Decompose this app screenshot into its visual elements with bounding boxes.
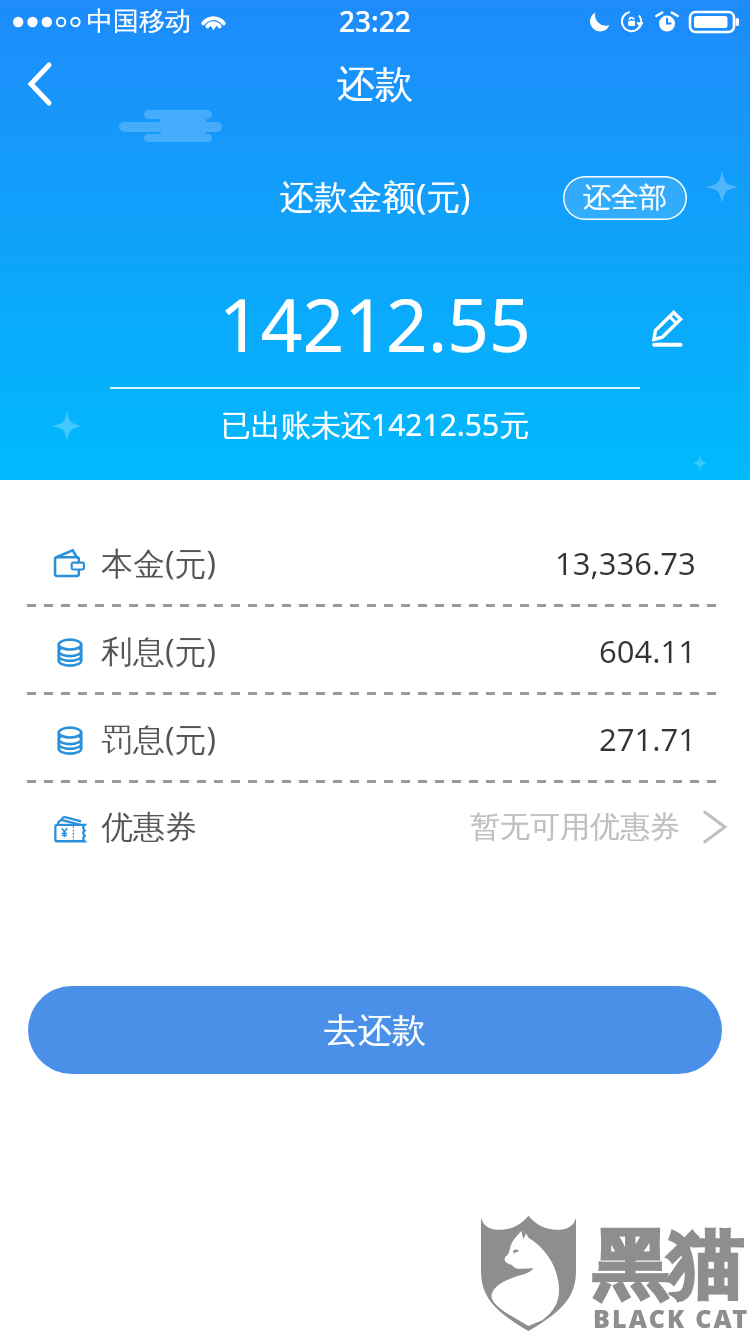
button[interactable]: 利息(元) [0,607,750,695]
staticText: 还款金额(元) [280,173,471,219]
staticText: 23:22 [339,2,411,40]
button[interactable]: Back [10,56,66,112]
staticText: BLACK CAT [593,1301,750,1334]
button[interactable]: 本金(元) [0,519,750,607]
staticText: 本金(元) [101,541,217,585]
staticText: 去还款 [324,1009,426,1052]
button[interactable]: Edit amount [635,296,697,358]
button[interactable]: 罚息(元) [0,695,750,783]
staticText: 271.71 [599,718,696,760]
staticText: 罚息(元) [101,717,217,761]
staticText: 还款 [337,60,413,108]
staticText: 13,336.73 [555,542,696,584]
staticText: 还全部 [583,180,667,215]
staticText: 中国移动 [87,5,191,38]
staticText: 利息(元) [101,629,217,673]
staticText: 14212.55 [219,274,531,373]
button[interactable]: 优惠券 [0,783,750,871]
staticText: 优惠券 [101,807,197,847]
button[interactable]: 还全部 [563,176,687,220]
staticText: 604.11 [599,630,696,672]
button[interactable]: 去还款 [28,986,722,1074]
staticText: 黑猫 [592,1219,742,1313]
staticText: 暂无可用优惠券 [470,808,680,846]
staticText: 已出账未还14212.55元 [221,404,530,445]
